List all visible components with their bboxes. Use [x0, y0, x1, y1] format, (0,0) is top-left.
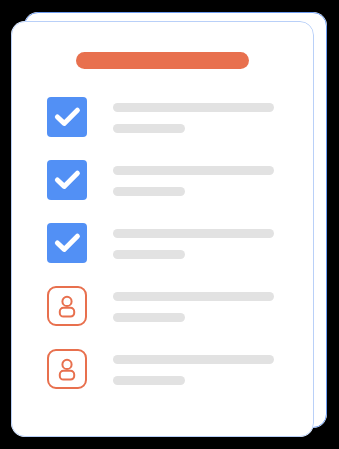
- button[interactable]: Completed task: [47, 97, 274, 137]
- other: Completed task: [47, 160, 87, 200]
- button[interactable]: Assigned person: [47, 286, 274, 326]
- other: Assigned person: [47, 286, 87, 326]
- button[interactable]: Completed task: [47, 223, 274, 263]
- other: Assigned person: [47, 349, 87, 389]
- other: Completed task: [47, 97, 87, 137]
- other: Completed task: [47, 223, 87, 263]
- button[interactable]: Assigned person: [47, 349, 274, 389]
- button[interactable]: Completed task: [47, 160, 274, 200]
- button[interactable]: Completed task: [11, 21, 314, 437]
